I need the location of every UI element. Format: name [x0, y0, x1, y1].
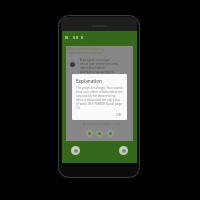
button[interactable]: Previous	[71, 146, 80, 155]
button[interactable]: Answer option	[70, 62, 75, 67]
staticText: Explanation	[76, 78, 116, 84]
button[interactable]: OK	[114, 111, 124, 118]
staticText: OK	[116, 112, 122, 117]
button[interactable]: Next	[119, 146, 128, 155]
staticText: The project manager. Your team's tune us…	[76, 86, 123, 110]
staticText: A project manager must	[83, 121, 123, 125]
staticText: A project manager must use every process…	[80, 57, 119, 74]
button[interactable]: Flag question	[96, 130, 103, 137]
button[interactable]: Previous question	[86, 130, 93, 137]
button[interactable]: Next question	[107, 130, 114, 137]
staticText: Which of the following statements is cor…	[67, 46, 119, 55]
